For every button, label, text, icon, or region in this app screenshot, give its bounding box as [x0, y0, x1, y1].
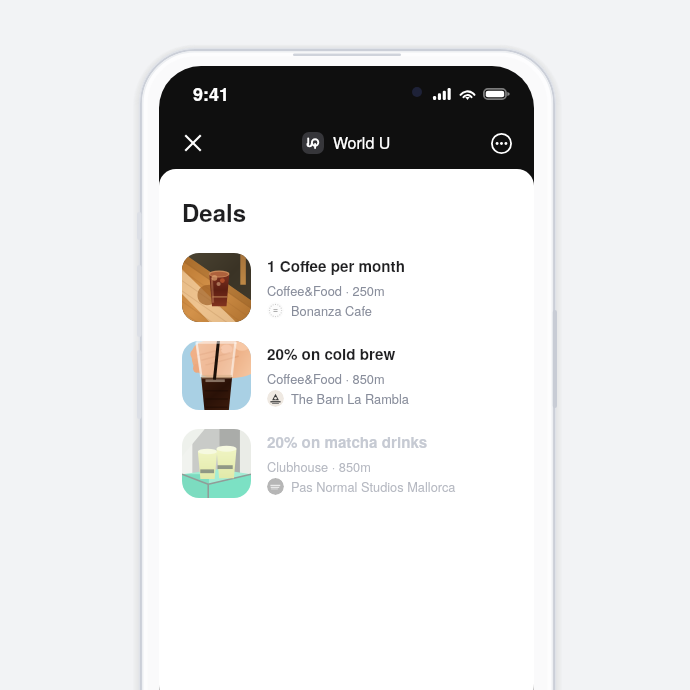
staticText: Coffee&Food · 250m [267, 281, 385, 299]
button[interactable]: 1 Coffee per month [182, 253, 511, 322]
staticText: 9:41 [193, 81, 230, 107]
staticText: Coffee&Food · 850m [267, 369, 385, 387]
staticText: 20% on matcha drinks [267, 431, 428, 453]
staticText: 20% on cold brew [267, 343, 396, 365]
staticText: Deals [182, 195, 247, 229]
staticText: Pas Normal Studios Mallorca [291, 477, 456, 495]
staticText: Bonanza Cafe [291, 301, 372, 319]
button[interactable]: More options [484, 126, 518, 160]
staticText: The Barn La Rambla [291, 389, 409, 407]
button[interactable]: 20% on cold brew [182, 341, 511, 410]
button[interactable]: 20% on matcha drinks [182, 429, 511, 498]
staticText: Clubhouse · 850m [267, 457, 371, 475]
button[interactable]: Close [176, 126, 210, 160]
staticText: 1 Coffee per month [267, 255, 405, 277]
button[interactable]: World U [302, 131, 391, 154]
staticText: World U [333, 131, 391, 154]
